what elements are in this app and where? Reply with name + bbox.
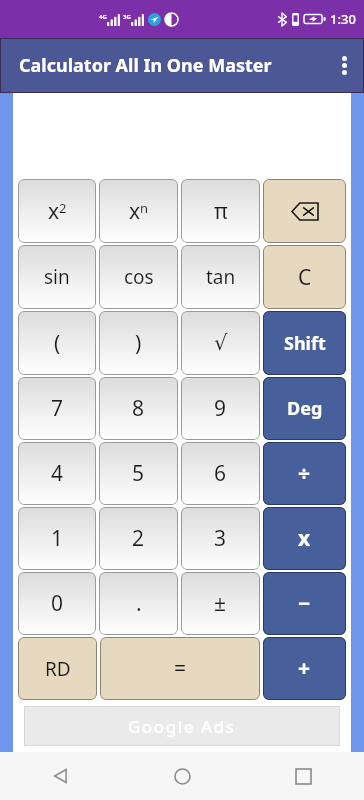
staticText: =	[174, 654, 187, 683]
button[interactable]: Home	[122, 752, 243, 800]
staticText: tan	[206, 264, 236, 290]
staticText: −	[298, 589, 311, 618]
staticText: .	[136, 589, 142, 618]
staticText: 2	[132, 524, 145, 553]
staticText: 4	[51, 459, 64, 488]
button[interactable]: √	[181, 311, 260, 375]
button[interactable]: π	[181, 179, 260, 243]
button[interactable]: Shift	[263, 311, 346, 375]
staticText: (	[54, 329, 61, 358]
staticText: xn	[129, 197, 149, 226]
button[interactable]: −	[263, 572, 346, 635]
staticText: 3	[214, 524, 227, 553]
button[interactable]: (	[18, 311, 96, 375]
staticText: 1:30	[330, 10, 356, 28]
button[interactable]: .	[99, 572, 178, 635]
button[interactable]: Recent apps	[243, 752, 364, 800]
button[interactable]: Google Ads	[24, 706, 340, 746]
button[interactable]: +	[263, 637, 346, 700]
button[interactable]: 4	[18, 442, 96, 505]
button[interactable]: 9	[181, 377, 260, 440]
button[interactable]: 7	[18, 377, 96, 440]
staticText: Shift	[284, 331, 326, 356]
staticText: cos	[124, 264, 154, 290]
staticText: Calculator All In One Master	[19, 53, 272, 78]
button[interactable]: 5	[99, 442, 178, 505]
button[interactable]: )	[99, 311, 178, 375]
button[interactable]: 2	[99, 507, 178, 570]
staticText: 3G	[123, 13, 131, 21]
staticText: 5	[132, 459, 145, 488]
button[interactable]: RD	[18, 637, 97, 700]
button[interactable]: Deg	[263, 377, 346, 440]
button[interactable]: ±	[181, 572, 260, 635]
button[interactable]: ÷	[263, 442, 346, 505]
button[interactable]: x2	[18, 179, 96, 243]
staticText: x	[298, 524, 311, 553]
button[interactable]: 6	[181, 442, 260, 505]
button[interactable]: xn	[99, 179, 178, 243]
button[interactable]: Calculator All In One Master	[0, 38, 364, 93]
button[interactable]: More options	[324, 38, 364, 93]
staticText: ±	[214, 589, 227, 618]
button[interactable]: x	[263, 507, 346, 570]
staticText: √	[214, 331, 228, 355]
staticText: π	[214, 197, 228, 226]
staticText: Deg	[287, 396, 323, 421]
staticText: 7	[51, 394, 64, 423]
staticText: ÷	[298, 459, 311, 488]
staticText: Google Ads	[128, 715, 236, 738]
staticText: +	[298, 654, 311, 683]
staticText: RD	[45, 656, 71, 682]
button[interactable]: =	[100, 637, 260, 700]
button[interactable]: tan	[181, 245, 260, 309]
staticText: 4G	[99, 13, 107, 21]
button[interactable]: 0	[18, 572, 96, 635]
staticText: 9	[214, 394, 227, 423]
button[interactable]: 8	[99, 377, 178, 440]
staticText: 0	[51, 589, 64, 618]
button[interactable]: Backspace	[263, 179, 346, 243]
staticText: C	[298, 263, 312, 292]
staticText: 8	[132, 394, 145, 423]
button[interactable]: sin	[18, 245, 96, 309]
staticText: sin	[44, 264, 70, 290]
button[interactable]: cos	[99, 245, 178, 309]
staticText: )	[135, 329, 142, 358]
staticText: 6	[214, 459, 227, 488]
button[interactable]: 1	[18, 507, 96, 570]
staticText: 1	[51, 524, 64, 553]
button[interactable]: C	[263, 245, 346, 309]
button[interactable]: 3	[181, 507, 260, 570]
button[interactable]: Back	[0, 752, 122, 800]
staticText: x2	[48, 197, 67, 226]
